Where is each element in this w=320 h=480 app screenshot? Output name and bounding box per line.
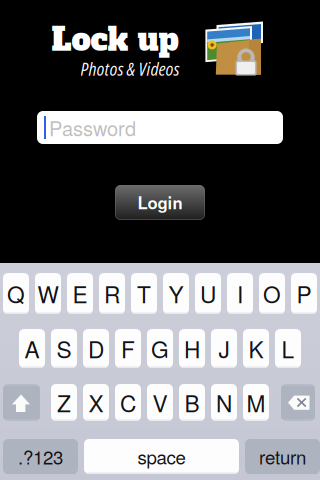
button[interactable]: K — [243, 329, 269, 368]
button[interactable]: H — [179, 329, 205, 368]
button[interactable]: P — [291, 273, 317, 314]
button[interactable]: B — [179, 384, 205, 421]
staticText: X — [88, 386, 103, 419]
button[interactable]: U — [195, 273, 221, 314]
button[interactable]: O — [259, 273, 285, 314]
button[interactable]: L — [275, 329, 301, 368]
staticText: M — [246, 386, 265, 419]
button[interactable]: I — [227, 273, 253, 314]
button[interactable]: G — [147, 329, 173, 368]
button[interactable]: R — [99, 273, 125, 314]
staticText: A — [24, 332, 39, 365]
staticText: Q — [7, 277, 25, 310]
staticText: .?123 — [18, 443, 63, 470]
staticText: Z — [57, 386, 71, 419]
staticText: F — [121, 332, 135, 365]
button[interactable]: A — [19, 329, 45, 368]
button[interactable]: Login — [115, 185, 205, 220]
button[interactable]: Shift — [3, 384, 40, 421]
button[interactable]: .?123 — [3, 439, 78, 474]
staticText: return — [259, 443, 306, 470]
button[interactable]: W — [35, 273, 61, 314]
staticText: B — [184, 386, 199, 419]
button[interactable]: N — [211, 384, 237, 421]
button[interactable]: return — [245, 439, 320, 474]
staticText: O — [263, 277, 281, 310]
button[interactable]: J — [211, 329, 237, 368]
staticText: S — [56, 332, 71, 365]
staticText: I — [237, 277, 243, 310]
staticText: Login — [137, 191, 182, 214]
staticText: K — [248, 332, 263, 365]
button[interactable]: E — [67, 273, 93, 314]
staticText: Y — [168, 277, 183, 310]
button[interactable]: F — [115, 329, 141, 368]
staticText: H — [184, 332, 200, 365]
staticText: T — [137, 277, 151, 310]
staticText: U — [200, 277, 216, 310]
button[interactable]: space — [84, 439, 239, 474]
staticText: Lock up — [51, 19, 178, 61]
button[interactable]: V — [147, 384, 173, 421]
button[interactable]: Q — [3, 273, 29, 314]
staticText: D — [88, 332, 104, 365]
button[interactable]: Delete — [281, 384, 315, 421]
staticText: G — [151, 332, 169, 365]
button[interactable]: D — [83, 329, 109, 368]
staticText: J — [218, 332, 229, 365]
staticText: Password — [49, 113, 136, 142]
staticText: W — [37, 277, 58, 310]
staticText: V — [152, 386, 167, 419]
button[interactable]: T — [131, 273, 157, 314]
button[interactable]: S — [51, 329, 77, 368]
staticText: L — [281, 332, 294, 365]
staticText: space — [137, 443, 185, 470]
staticText: P — [296, 277, 311, 310]
staticText: N — [216, 386, 232, 419]
staticText: E — [72, 277, 87, 310]
button[interactable]: Y — [163, 273, 189, 314]
staticText: Photos & Videos — [80, 57, 179, 81]
staticText: R — [104, 277, 120, 310]
button[interactable]: Z — [51, 384, 77, 421]
button[interactable]: M — [243, 384, 269, 421]
button[interactable]: X — [83, 384, 109, 421]
staticText: C — [120, 386, 136, 419]
button[interactable]: C — [115, 384, 141, 421]
